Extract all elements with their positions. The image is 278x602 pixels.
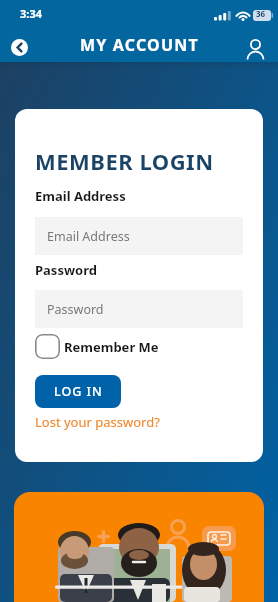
button[interactable]: [245, 35, 267, 57]
button[interactable]: [14, 492, 264, 602]
staticText: LOG IN: [54, 383, 103, 400]
button[interactable]: Lost your password?: [35, 413, 160, 431]
button[interactable]: [35, 334, 60, 359]
staticText: Password: [35, 261, 97, 279]
staticText: 36: [256, 8, 266, 19]
staticText: Email Address: [35, 187, 126, 205]
staticText: Email Address: [47, 228, 130, 245]
button[interactable]: Password: [35, 290, 243, 328]
staticText: MEMBER LOGIN: [35, 146, 214, 176]
staticText: 3:34: [20, 6, 42, 21]
staticText: Remember Me: [64, 338, 159, 356]
staticText: MY ACCOUNT: [80, 34, 199, 56]
button[interactable]: Email Address: [35, 217, 243, 255]
staticText: Password: [47, 301, 104, 318]
button[interactable]: LOG IN: [35, 375, 121, 408]
button[interactable]: [11, 39, 28, 56]
